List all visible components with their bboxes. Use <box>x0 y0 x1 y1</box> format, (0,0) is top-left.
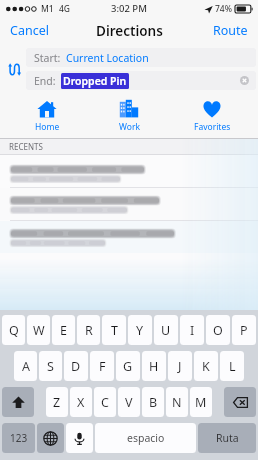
button[interactable]: N <box>166 387 188 417</box>
staticText: A <box>22 358 30 375</box>
button[interactable] <box>0 188 258 220</box>
button[interactable]: Favorites <box>176 97 248 135</box>
button[interactable]: Dictate <box>66 423 93 453</box>
staticText: 123 <box>10 431 28 445</box>
button[interactable]: R <box>77 315 100 345</box>
staticText: Home <box>35 121 60 133</box>
button[interactable]: Swap start and end <box>3 58 25 80</box>
button[interactable]: Route <box>203 18 258 43</box>
staticText: M1 <box>41 3 54 15</box>
staticText: 3:02 PM <box>111 2 147 15</box>
button[interactable]: 123 <box>2 423 35 453</box>
button[interactable]: Work <box>93 97 165 135</box>
staticText: Route <box>213 22 248 39</box>
staticText: Cancel <box>10 22 49 39</box>
button[interactable]: Q <box>2 315 25 345</box>
button[interactable]: Backspace <box>224 387 256 417</box>
staticText: Z <box>53 394 61 411</box>
staticText: P <box>240 322 248 339</box>
staticText: 74% <box>215 3 232 15</box>
button[interactable]: Start: <box>26 48 256 67</box>
staticText: E <box>60 322 67 339</box>
staticText: I <box>190 322 195 339</box>
button[interactable]: G <box>116 351 140 381</box>
button[interactable]: E <box>52 315 75 345</box>
staticText: Work <box>119 121 140 133</box>
staticText: B <box>149 394 158 411</box>
button[interactable]: X <box>70 387 92 417</box>
staticText: F <box>99 358 106 375</box>
staticText: R <box>85 322 93 339</box>
button[interactable]: Clear destination <box>238 74 251 87</box>
button[interactable]: Z <box>46 387 68 417</box>
staticText: K <box>202 358 210 375</box>
staticText: Favorites <box>194 121 231 133</box>
button[interactable]: W <box>27 315 50 345</box>
button[interactable]: espacio <box>95 423 196 453</box>
staticText: Directions <box>96 22 163 40</box>
button[interactable]: D <box>64 351 88 381</box>
staticText: RECENTS <box>9 141 43 152</box>
staticText: H <box>149 358 159 375</box>
button[interactable]: A <box>14 351 37 381</box>
staticText: L <box>229 358 236 375</box>
staticText: Y <box>136 322 144 339</box>
button[interactable]: I <box>180 315 204 345</box>
button[interactable]: K <box>194 351 218 381</box>
staticText: V <box>125 394 133 411</box>
staticText: U <box>161 322 171 339</box>
staticText: T <box>111 322 118 339</box>
button[interactable]: B <box>142 387 164 417</box>
staticText: W <box>33 322 45 339</box>
staticText: Current Location <box>66 51 149 65</box>
button[interactable]: Ruta <box>198 423 256 453</box>
staticText: N <box>172 394 182 411</box>
staticText: 4G <box>59 3 71 15</box>
button[interactable]: Cancel <box>0 18 59 43</box>
button[interactable] <box>0 221 258 253</box>
staticText: Dropped Pin <box>63 74 127 88</box>
staticText: Ruta <box>216 431 239 445</box>
button[interactable]: Home <box>11 97 83 135</box>
staticText: X <box>77 394 85 411</box>
button[interactable]: J <box>168 351 192 381</box>
button[interactable]: Shift <box>2 387 34 417</box>
button[interactable]: H <box>142 351 166 381</box>
staticText: D <box>71 358 81 375</box>
button[interactable]: End: <box>26 71 256 90</box>
staticText: G <box>123 358 133 375</box>
staticText: M <box>195 394 207 411</box>
staticText: End: <box>34 74 56 88</box>
button[interactable]: O <box>206 315 230 345</box>
button[interactable]: C <box>94 387 116 417</box>
button[interactable]: P <box>232 315 256 345</box>
staticText: S <box>47 358 54 375</box>
button[interactable]: F <box>90 351 114 381</box>
staticText: J <box>178 358 182 375</box>
button[interactable]: L <box>220 351 244 381</box>
button[interactable]: U <box>154 315 178 345</box>
button[interactable]: V <box>118 387 140 417</box>
button[interactable]: T <box>102 315 126 345</box>
staticText: Q <box>9 322 19 339</box>
button[interactable]: S <box>39 351 62 381</box>
staticText: C <box>101 394 109 411</box>
button[interactable] <box>0 155 258 187</box>
staticText: O <box>213 322 223 339</box>
staticText: Start: <box>34 51 61 65</box>
button[interactable]: Y <box>128 315 152 345</box>
staticText: espacio <box>127 431 165 445</box>
button[interactable]: M <box>190 387 212 417</box>
button[interactable]: Change keyboard <box>37 423 64 453</box>
